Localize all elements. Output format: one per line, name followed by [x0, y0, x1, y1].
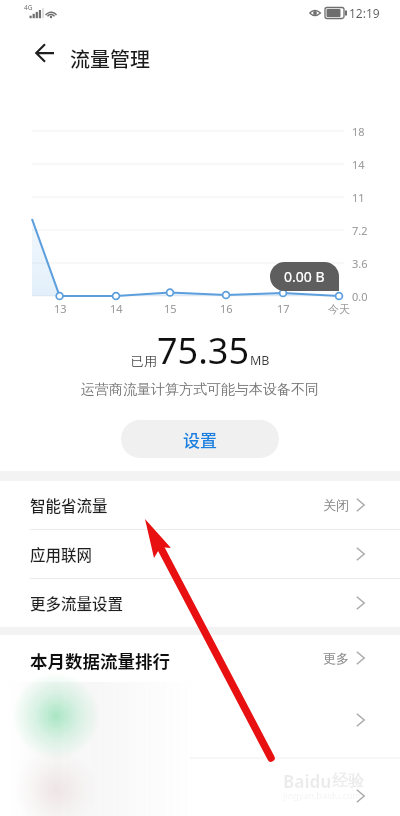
button[interactable]: 设置 [121, 420, 279, 458]
staticText: 流量管理 [70, 44, 150, 73]
staticText: 3.6 [352, 256, 368, 271]
staticText: 本月数据流量排行 [30, 648, 170, 673]
staticText: 0.0 [352, 289, 368, 304]
button[interactable]: 智能省流量 [0, 481, 400, 529]
staticText: 运营商流量计算方式可能与本设备不同 [81, 381, 319, 399]
staticText: 16 [220, 301, 233, 316]
button[interactable]: 应用联网 [0, 530, 400, 578]
staticText: 7.2 [352, 223, 368, 238]
button[interactable]: Back [22, 30, 68, 76]
staticText: jingyan.baidu.com [283, 789, 361, 801]
button[interactable]: App detail [356, 713, 365, 727]
button[interactable]: App detail [356, 789, 365, 803]
button[interactable]: 更多 [323, 650, 365, 666]
staticText: 14 [352, 157, 365, 172]
staticText: 智能省流量 [30, 494, 108, 516]
staticText: 设置 [183, 427, 217, 452]
staticText: 应用联网 [30, 543, 93, 565]
staticText: 0.00 B [284, 267, 325, 286]
staticText: 17 [277, 301, 290, 316]
staticText: Baidu [283, 770, 332, 793]
staticText: 4G [24, 3, 33, 12]
staticText: 12:19 [349, 5, 380, 21]
staticText: 75.35 [157, 326, 250, 375]
staticText: 经验 [332, 771, 364, 791]
staticText: 14 [110, 301, 123, 316]
staticText: 11 [352, 190, 365, 205]
staticText: 今天 [328, 302, 350, 316]
staticText: 15 [164, 301, 177, 316]
staticText: 13 [54, 301, 67, 316]
button[interactable]: 更多流量设置 [0, 579, 400, 627]
staticText: 已用 [131, 353, 157, 369]
staticText: 更多流量设置 [30, 592, 124, 614]
staticText: 更多 [323, 650, 349, 666]
staticText: 关闭 [323, 497, 349, 513]
staticText: 18 [352, 124, 365, 139]
staticText: MB [250, 352, 270, 369]
